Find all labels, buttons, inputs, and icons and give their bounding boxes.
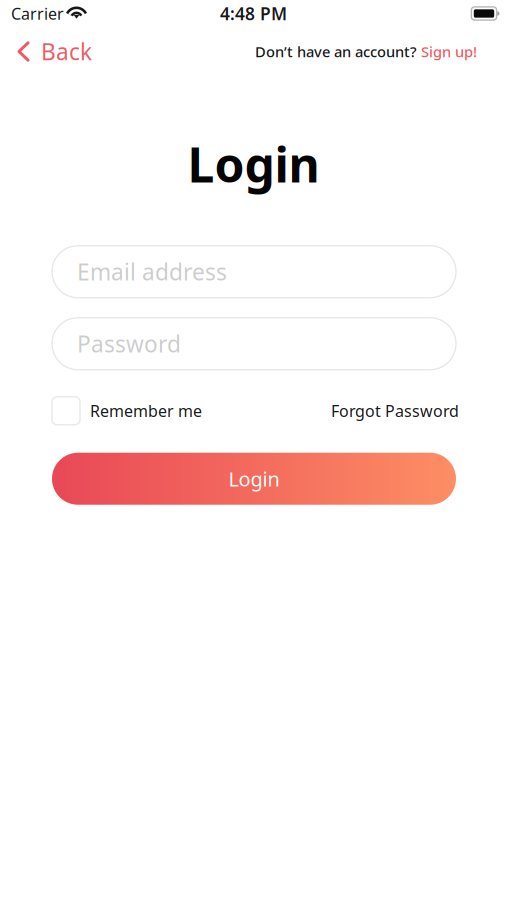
staticText: Email address xyxy=(77,257,227,287)
button[interactable]: Don’t have an account? xyxy=(241,36,507,67)
staticText: Carrier xyxy=(11,3,64,24)
staticText: 4:48 PM xyxy=(220,2,287,25)
staticText: Forgot Password xyxy=(331,400,459,421)
button[interactable]: Remember me xyxy=(52,397,202,425)
staticText: Don’t have an account? xyxy=(255,42,417,61)
staticText: Password xyxy=(77,329,181,359)
staticText: Back xyxy=(41,36,92,66)
button[interactable]: Login xyxy=(0,453,507,505)
staticText: Login xyxy=(228,465,279,492)
button[interactable]: Forgot Password xyxy=(331,400,459,421)
button[interactable]: Password xyxy=(52,318,456,370)
staticText: Remember me xyxy=(90,400,202,421)
staticText: Sign up! xyxy=(421,42,477,61)
staticText: Login xyxy=(187,132,319,196)
button[interactable]: Email address xyxy=(52,246,456,298)
button[interactable]: Back xyxy=(0,30,106,72)
